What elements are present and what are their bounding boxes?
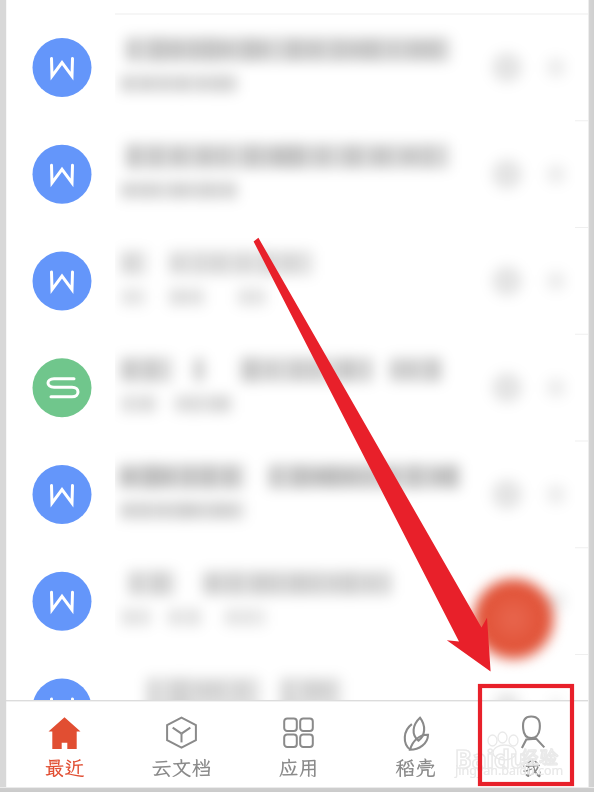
button[interactable]: New document xyxy=(473,579,553,659)
button[interactable] xyxy=(6,120,589,227)
staticText: 最近 xyxy=(6,754,123,792)
staticText: jingyan.baidu.com xyxy=(455,762,564,779)
button[interactable] xyxy=(6,441,589,548)
button[interactable]: 我 xyxy=(474,702,589,788)
button[interactable]: 稻壳 xyxy=(357,702,474,788)
staticText: 稻壳 xyxy=(357,754,474,792)
staticText: 经验 xyxy=(520,744,559,769)
staticText: 我 xyxy=(474,754,589,792)
staticText: Baidu xyxy=(455,741,527,775)
button[interactable] xyxy=(6,14,589,121)
button[interactable]: 最近 xyxy=(6,702,123,788)
button[interactable] xyxy=(6,227,589,334)
button[interactable]: 应用 xyxy=(240,702,357,788)
button[interactable]: 云文档 xyxy=(123,702,240,788)
button[interactable] xyxy=(6,654,589,701)
staticText: 云文档 xyxy=(123,754,240,792)
staticText: 应用 xyxy=(240,754,357,792)
button[interactable] xyxy=(6,547,589,654)
button[interactable] xyxy=(6,334,589,441)
